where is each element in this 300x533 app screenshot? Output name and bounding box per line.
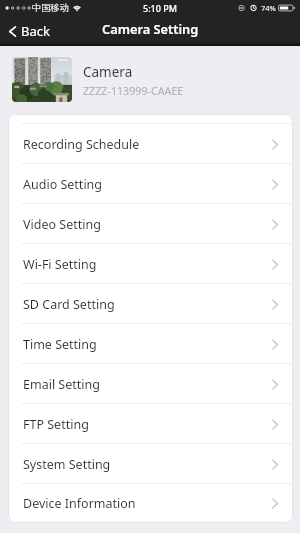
- staticText: Video Setting: [23, 216, 101, 233]
- staticText: System Setting: [23, 456, 111, 473]
- staticText: Email Setting: [23, 376, 100, 393]
- staticText: SD Card Setting: [23, 296, 115, 313]
- staticText: Audio Setting: [23, 176, 103, 193]
- staticText: 5:10 PM: [143, 2, 177, 14]
- button[interactable]: SD Card Setting: [8, 284, 293, 324]
- button[interactable]: Wi-Fi Setting: [8, 244, 293, 284]
- button[interactable]: Video Setting: [8, 204, 293, 244]
- staticText: Camera Setting: [102, 20, 199, 37]
- button[interactable]: Camera live snapshot: [0, 47, 300, 113]
- staticText: Wi-Fi Setting: [23, 256, 97, 273]
- button[interactable]: Email Setting: [8, 364, 293, 404]
- staticText: Back: [21, 22, 50, 40]
- button[interactable]: Back: [0, 17, 60, 45]
- other: Camera live snapshot: [12, 57, 72, 102]
- staticText: FTP Setting: [23, 416, 89, 433]
- staticText: ZZZZ-113999-CAAEE: [83, 84, 184, 99]
- button[interactable]: FTP Setting: [8, 404, 293, 444]
- staticText: Camera: [83, 63, 133, 81]
- staticText: Recording Schedule: [23, 136, 140, 153]
- staticText: Time Setting: [23, 336, 97, 353]
- button[interactable]: System Setting: [8, 444, 293, 484]
- button[interactable]: Audio Setting: [8, 164, 293, 204]
- button[interactable]: Recording Schedule: [8, 124, 293, 164]
- button[interactable]: Time Setting: [8, 324, 293, 364]
- staticText: 74%: [261, 3, 276, 13]
- staticText: 中国移动: [32, 2, 69, 14]
- staticText: Device Information: [23, 495, 136, 512]
- button[interactable]: Device Information: [8, 484, 293, 523]
